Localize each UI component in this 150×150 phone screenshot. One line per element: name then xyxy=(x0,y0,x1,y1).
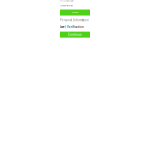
staticText: Personal Information xyxy=(60,18,89,22)
staticText: Continue xyxy=(71,12,78,13)
staticText: Level Verification xyxy=(60,5,73,7)
staticText: Continue xyxy=(68,33,82,36)
staticText: Personal Information xyxy=(60,0,74,2)
staticText: Level Verification xyxy=(60,25,84,29)
